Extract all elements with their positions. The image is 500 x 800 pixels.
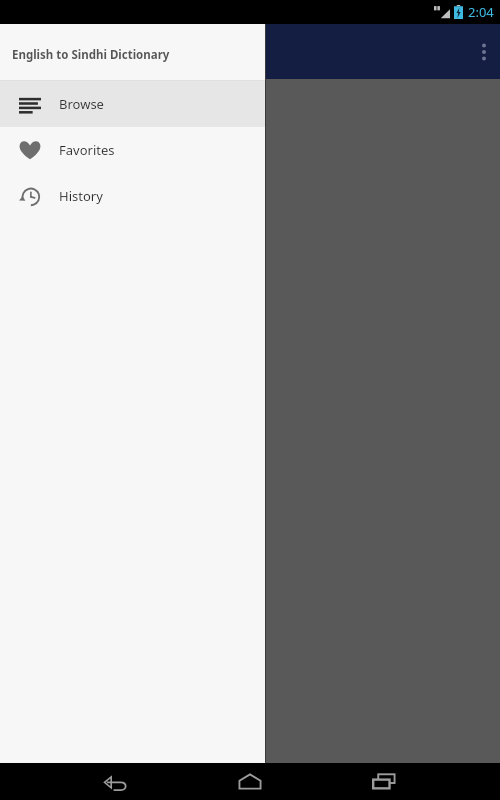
staticText: Browse xyxy=(59,95,104,113)
button[interactable]: Favorites xyxy=(0,127,266,173)
staticText: History xyxy=(59,187,103,205)
button[interactable]: Back xyxy=(87,763,145,800)
staticText: English to Sindhi Dictionary xyxy=(12,47,170,63)
button[interactable]: History xyxy=(0,173,266,219)
button[interactable]: Recent apps xyxy=(355,763,413,800)
button[interactable] xyxy=(0,79,500,763)
button[interactable]: More options xyxy=(468,24,500,79)
staticText: Favorites xyxy=(59,141,115,159)
button[interactable]: Home xyxy=(221,763,279,800)
staticText: 2:04 xyxy=(468,3,494,21)
button[interactable]: Browse xyxy=(0,81,266,127)
